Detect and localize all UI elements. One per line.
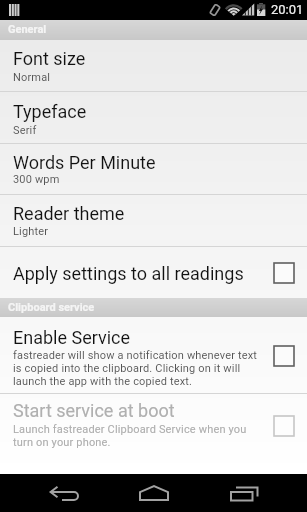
button[interactable]: Apply settings to all readings [0, 247, 307, 298]
button[interactable]: Toggle checkbox [273, 345, 295, 367]
button[interactable]: Enable Service [0, 317, 307, 393]
staticText: fastreader will show a notification when… [13, 349, 258, 388]
staticText: Start service at boot [13, 400, 175, 421]
staticText: 20:01 [271, 2, 304, 17]
staticText: Typeface [13, 101, 87, 122]
staticText: General [8, 23, 47, 36]
staticText: 300 wpm [13, 173, 60, 186]
staticText: Reader theme [13, 203, 125, 224]
staticText: Clipboard service [8, 301, 95, 314]
button[interactable]: Font size [0, 40, 307, 91]
staticText: Apply settings to all readings [13, 263, 244, 284]
staticText: Lighter [13, 225, 49, 238]
button[interactable]: Start service at boot [0, 394, 307, 474]
staticText: Font size [13, 48, 86, 69]
staticText: Launch fastreader Clipboard Service when… [13, 423, 247, 449]
button[interactable]: Home [119, 474, 189, 512]
button[interactable]: Typeface [0, 92, 307, 143]
button[interactable]: Back [29, 474, 99, 512]
button[interactable]: Recent apps [209, 474, 279, 512]
staticText: Serif [13, 124, 37, 137]
staticText: Enable Service [13, 327, 131, 348]
staticText: Words Per Minute [13, 152, 156, 173]
button[interactable]: Reader theme [0, 195, 307, 246]
button[interactable]: Toggle checkbox [273, 262, 295, 284]
staticText: Normal [13, 71, 51, 84]
button[interactable]: Words Per Minute [0, 144, 307, 194]
button[interactable]: Toggle checkbox [273, 415, 295, 437]
